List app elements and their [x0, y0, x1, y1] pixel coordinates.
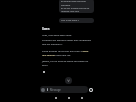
staticText: Parce qu'elles ne se font pas chier à gé…	[42, 49, 89, 57]
staticText: Jéveux, j'ai un fond de vérité qui pique…	[42, 59, 89, 67]
button[interactable]: Scroll to bottom	[65, 77, 72, 84]
button[interactable]: Back	[49, 94, 62, 102]
button[interactable]: Camera	[40, 86, 88, 93]
button[interactable]: Recents	[75, 94, 88, 102]
staticText: Message	[50, 88, 61, 92]
staticText: Gwen	[42, 27, 50, 31]
staticText: Pourquoi les femmes vivent plus longtemp…	[42, 38, 92, 46]
button[interactable]: Et quand j'avais elle était mariante Et …	[59, 0, 94, 13]
button[interactable]: Send	[89, 88, 93, 92]
button[interactable]: Camera	[41, 88, 45, 92]
button[interactable]: Voice message	[47, 88, 48, 91]
staticText: T'en a une autre ?	[61, 19, 79, 22]
staticText: Et quand j'avais elle était mariante Et …	[61, 0, 90, 12]
staticText: Allez, une autre bien vaille	[42, 33, 72, 36]
button[interactable]: Home	[62, 94, 75, 102]
button[interactable]: T'en a une autre ?	[59, 18, 94, 23]
